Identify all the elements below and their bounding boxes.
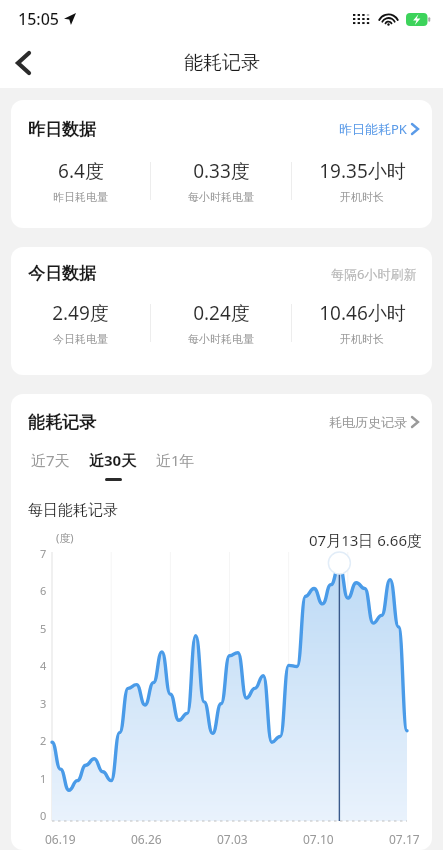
button[interactable]: 近30天	[86, 450, 140, 481]
staticText: 开机时长	[340, 332, 384, 346]
staticText: 19.35小时	[319, 158, 406, 184]
staticText: (度)	[56, 530, 74, 545]
staticText: 6.4度	[58, 158, 104, 184]
staticText: 0.33度	[193, 158, 250, 184]
button[interactable]: 近7天	[28, 450, 73, 478]
staticText: 0.24度	[193, 300, 250, 326]
button[interactable]: 昨日能耗PK	[334, 116, 423, 142]
staticText: 每小时耗电量	[188, 332, 254, 346]
staticText: 0	[40, 808, 47, 823]
staticText: 昨日数据	[28, 119, 96, 140]
staticText: 4	[40, 658, 47, 673]
staticText: 开机时长	[340, 190, 384, 204]
staticText: 7	[40, 546, 47, 561]
staticText: 2	[40, 733, 47, 748]
staticText: 昨日能耗PK	[339, 120, 407, 138]
staticText: 07.17	[389, 831, 420, 847]
staticText: 能耗记录	[28, 412, 96, 433]
staticText: 今日耗电量	[53, 332, 108, 346]
staticText: 近7天	[31, 450, 70, 470]
staticText: 近1年	[156, 450, 195, 470]
staticText: 昨日耗电量	[53, 190, 108, 204]
button[interactable]: 近1年	[153, 450, 198, 478]
staticText: 07月13日 6.66度	[309, 530, 422, 550]
staticText: 2.49度	[52, 300, 109, 326]
staticText: 每小时耗电量	[188, 190, 254, 204]
staticText: 06.26	[131, 831, 162, 847]
button[interactable]: 耗电历史记录	[324, 410, 423, 434]
staticText: 07.03	[217, 831, 248, 847]
staticText: 近30天	[89, 450, 137, 470]
staticText: 10.46小时	[319, 300, 406, 326]
staticText: 耗电历史记录	[329, 414, 407, 430]
staticText: 今日数据	[28, 263, 96, 284]
staticText: 每隔6小时刷新	[331, 265, 417, 283]
staticText: 15:05	[18, 8, 59, 30]
staticText: 3	[40, 696, 47, 711]
staticText: 6	[40, 583, 47, 598]
button[interactable]: Back	[0, 40, 46, 86]
staticText: 06.19	[45, 831, 76, 847]
staticText: 5	[40, 621, 47, 636]
staticText: 1	[40, 771, 47, 786]
staticText: 07.10	[303, 831, 334, 847]
staticText: 能耗记录	[184, 51, 260, 75]
staticText: 每日能耗记录	[28, 501, 118, 520]
